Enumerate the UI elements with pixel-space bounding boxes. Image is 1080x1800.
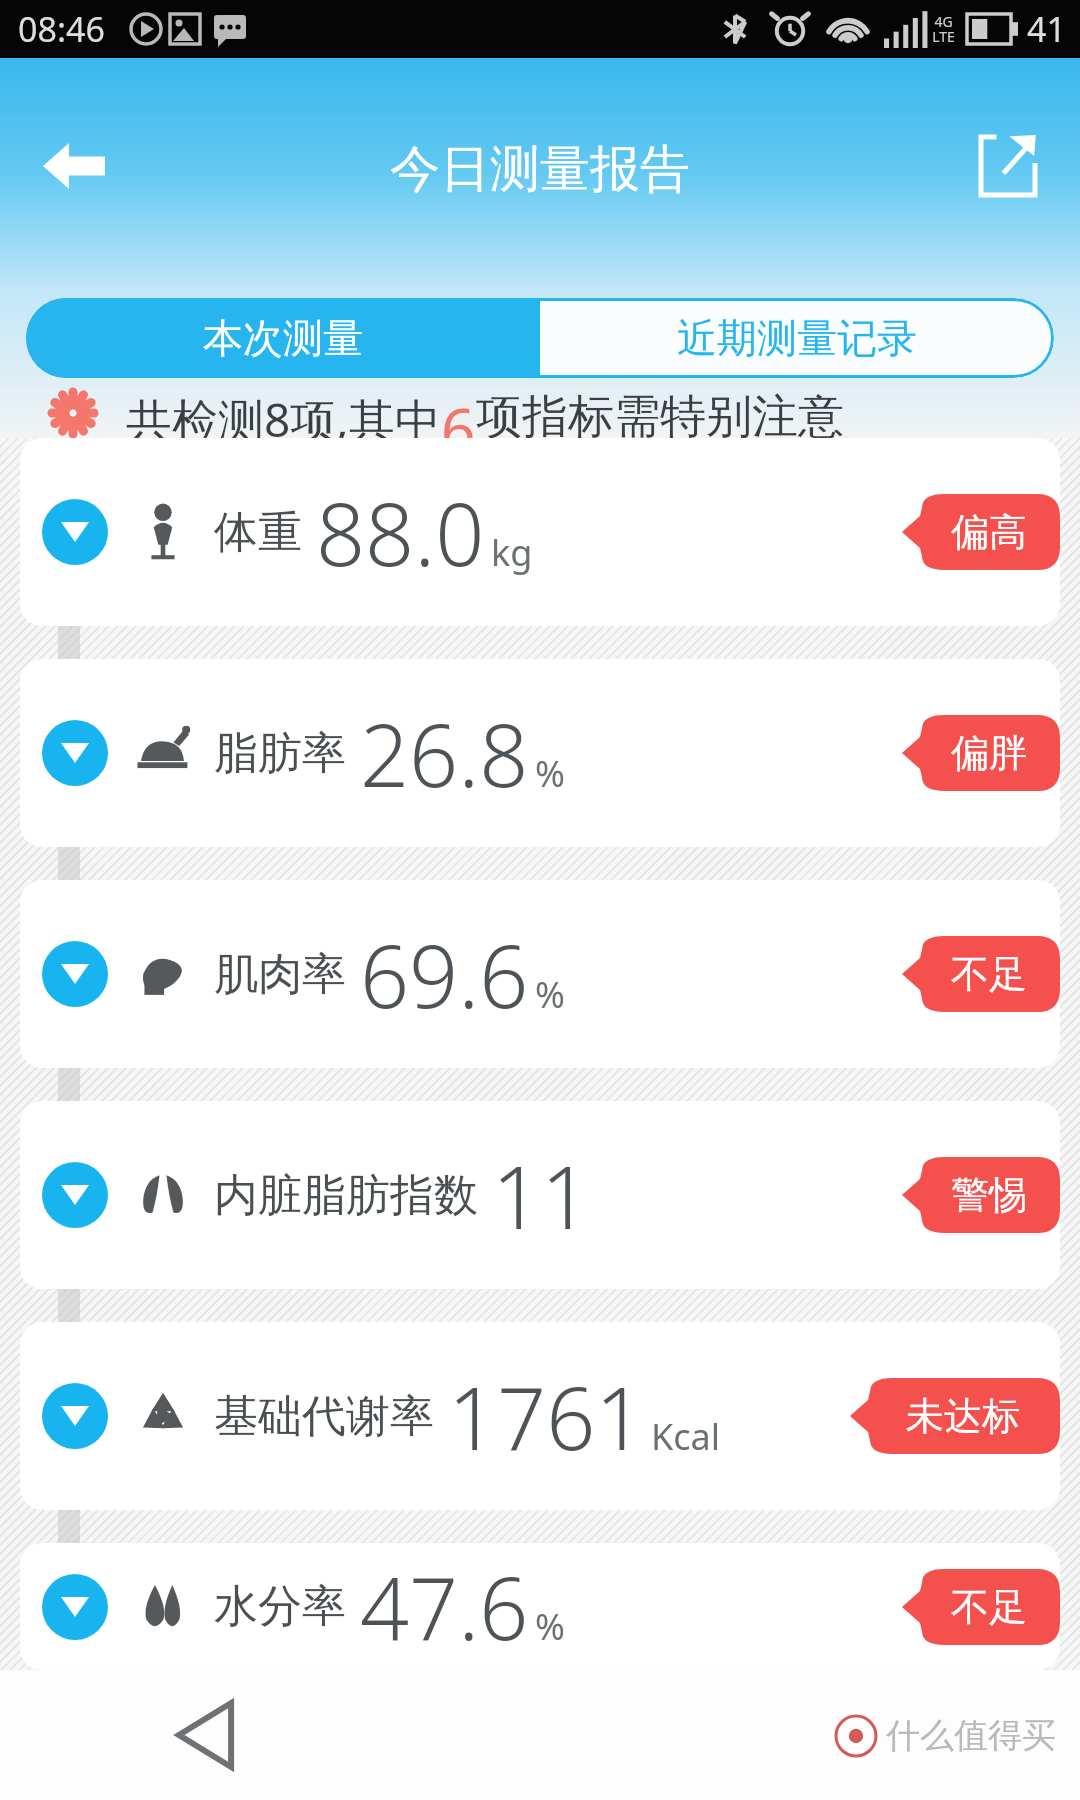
staticText: 47.6	[360, 1548, 529, 1665]
button[interactable]: 本次测量	[26, 298, 540, 378]
staticText: 偏胖	[951, 729, 1027, 777]
staticText: 69.6	[360, 916, 529, 1033]
staticText: 什么值得买	[886, 1714, 1056, 1757]
staticText: kg	[491, 528, 533, 577]
staticText: 41	[1027, 6, 1066, 52]
staticText: 体重	[214, 505, 302, 560]
staticText: 6	[441, 388, 476, 438]
staticText: 内脏脂肪指数	[214, 1168, 478, 1223]
button[interactable]: 水分率	[20, 1543, 1060, 1670]
staticText: 脂肪率	[214, 726, 346, 781]
staticText: 水分率	[214, 1579, 346, 1634]
staticText: 26.8	[360, 695, 529, 812]
staticText: 基础代谢率	[214, 1389, 434, 1444]
staticText: 08:46	[18, 6, 105, 52]
button[interactable]: 脂肪率	[20, 659, 1060, 847]
staticText: 不足	[951, 1583, 1027, 1631]
staticText: %	[535, 970, 565, 1019]
staticText: Kcal	[651, 1412, 721, 1461]
staticText: 偏高	[951, 508, 1027, 556]
button[interactable]: Back	[26, 118, 122, 214]
staticText: 共检测8项,其中	[126, 388, 441, 438]
button[interactable]: Back	[150, 1680, 260, 1790]
button[interactable]: 基础代谢率	[20, 1322, 1060, 1510]
button[interactable]: 内脏脂肪指数	[20, 1101, 1060, 1289]
button[interactable]: 肌肉率	[20, 880, 1060, 1068]
button[interactable]: Share	[962, 120, 1054, 212]
button[interactable]: 体重	[20, 438, 1060, 626]
staticText: 肌肉率	[214, 947, 346, 1002]
staticText: %	[535, 1602, 565, 1651]
staticText: 本次测量	[203, 313, 363, 363]
staticText: %	[535, 749, 565, 798]
staticText: 88.0	[316, 474, 485, 591]
staticText: 项指标需特别注意	[476, 388, 844, 438]
staticText: 未达标	[906, 1392, 1020, 1440]
staticText: 近期测量记录	[677, 313, 917, 363]
staticText: 11	[492, 1137, 591, 1254]
staticText: 警惕	[951, 1171, 1027, 1219]
button[interactable]: 近期测量记录	[540, 298, 1054, 378]
staticText: 今日测量报告	[390, 138, 690, 201]
staticText: 1761	[448, 1358, 645, 1475]
staticText: 不足	[951, 950, 1027, 998]
staticText: 4G LTE	[932, 12, 955, 46]
